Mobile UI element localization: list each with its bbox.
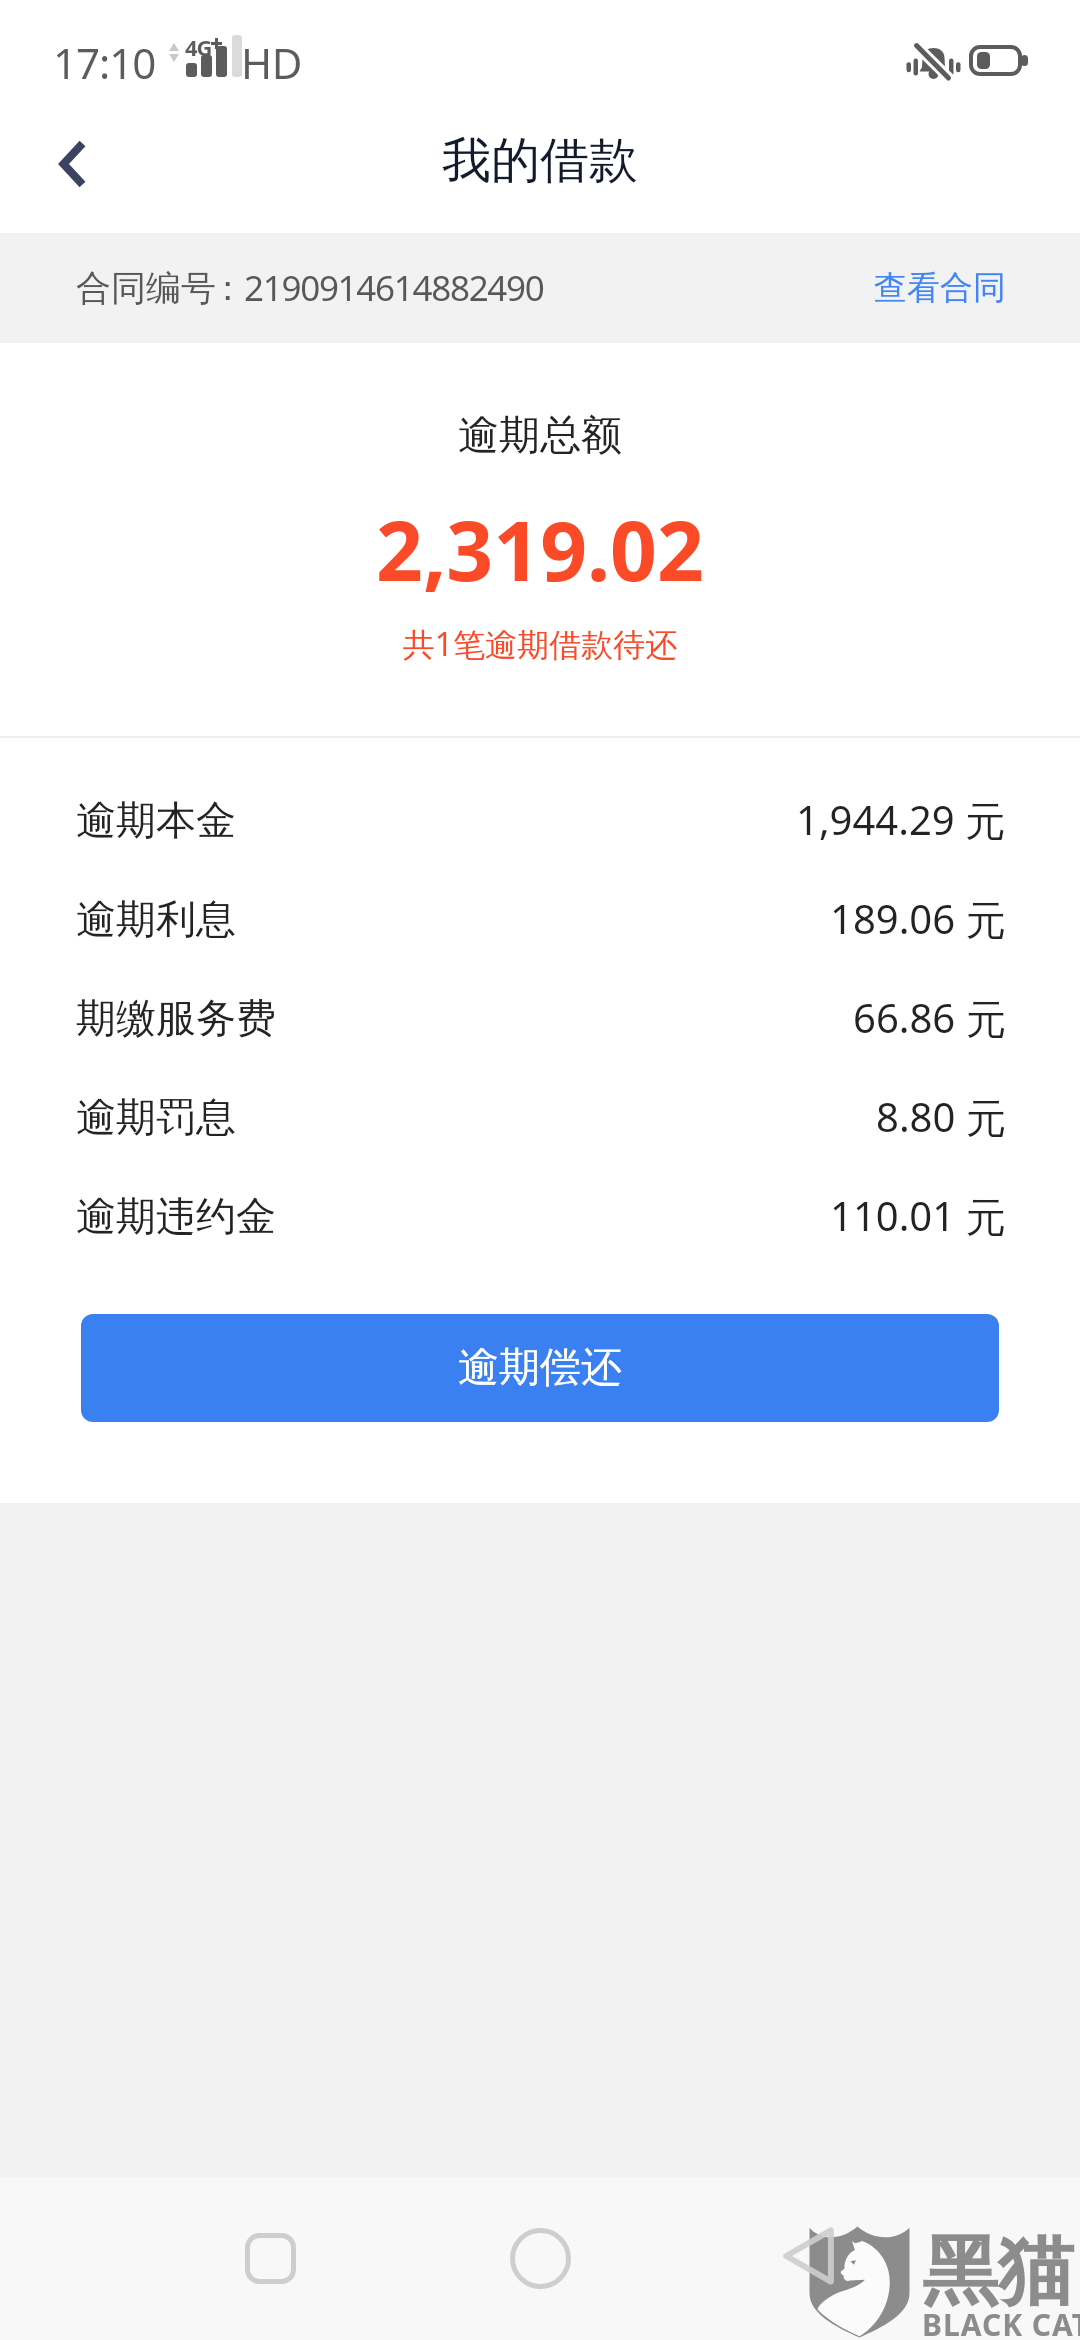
staticText: 8.80 元 — [876, 1089, 1006, 1144]
staticText: 逾期偿还 — [458, 1342, 622, 1394]
staticText: 2,319.02 — [0, 493, 1080, 605]
staticText: 查看合同 — [874, 267, 1006, 309]
staticText: 2190914614882490 — [244, 264, 544, 312]
staticText: 逾期总额 — [0, 410, 1080, 462]
staticText: 1,944.29 元 — [796, 792, 1006, 847]
button[interactable]: Back — [30, 121, 116, 207]
staticText: ： — [217, 266, 238, 310]
button[interactable]: Home — [510, 2228, 571, 2289]
staticText: 110.01 元 — [830, 1188, 1006, 1243]
button[interactable]: 逾期本金 — [0, 770, 1080, 869]
button[interactable]: 期缴服务费 — [0, 968, 1080, 1067]
staticText: 黑猫 — [922, 2224, 1074, 2320]
staticText: 共1笔逾期借款待还 — [0, 622, 1080, 666]
staticText: 66.86 元 — [853, 990, 1006, 1045]
button[interactable]: 逾期偿还 — [81, 1314, 999, 1422]
staticText: 我的借款 — [442, 130, 638, 192]
staticText: 期缴服务费 — [76, 993, 276, 1043]
staticText: 17:10 — [53, 34, 156, 91]
staticText: 合同编号 — [76, 266, 216, 310]
button[interactable]: 逾期利息 — [0, 869, 1080, 968]
staticText: 189.06 元 — [830, 891, 1006, 946]
button[interactable]: 查看合同 — [874, 267, 1006, 309]
button[interactable]: 逾期罚息 — [0, 1067, 1080, 1166]
staticText: 逾期罚息 — [76, 1092, 236, 1142]
button[interactable]: Recent apps — [245, 2233, 296, 2284]
staticText: 逾期利息 — [76, 894, 236, 944]
staticText: 逾期本金 — [76, 795, 236, 845]
staticText: BLACK CAT — [922, 2304, 1080, 2340]
staticText: 4G — [185, 32, 212, 62]
staticText: 逾期违约金 — [76, 1191, 276, 1241]
button[interactable]: Back — [782, 2227, 834, 2285]
button[interactable]: 逾期违约金 — [0, 1166, 1080, 1265]
staticText: HD — [241, 34, 302, 91]
